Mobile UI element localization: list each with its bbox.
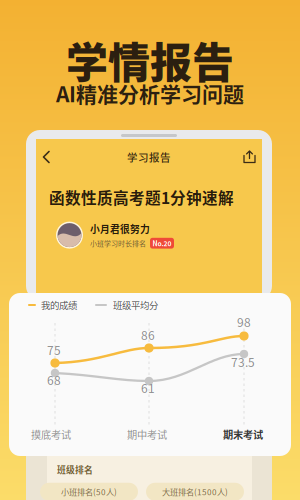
button[interactable]: 大班排名(1500人) <box>146 483 244 500</box>
staticText: 摸底考试 <box>31 427 71 442</box>
staticText: No.20 <box>152 238 171 248</box>
staticText: 学情报告 <box>66 30 234 90</box>
button[interactable]: 小班排名(50人) <box>40 483 138 500</box>
staticText: 86 <box>141 326 155 343</box>
staticText: 大班排名(1500人) <box>162 486 228 498</box>
staticText: 期末考试 <box>223 427 263 442</box>
staticText: 小班学习时长排名 <box>90 238 146 248</box>
staticText: 73.5 <box>231 353 255 370</box>
staticText: 班级排名 <box>57 463 93 476</box>
staticText: 98 <box>237 313 251 330</box>
staticText: 小月君很努力 <box>90 222 150 236</box>
staticText: 61 <box>141 379 155 396</box>
staticText: 函数性质高考题1分钟速解 <box>49 186 234 209</box>
staticText: 小班排名(50人) <box>61 486 117 498</box>
staticText: 学习报告 <box>127 149 171 165</box>
button[interactable]: 分享 <box>237 145 262 169</box>
staticText: 班级平均分 <box>113 298 158 312</box>
staticText: AI精准分析学习问题 <box>56 78 244 108</box>
button[interactable]: 返回 <box>36 145 57 169</box>
staticText: 期中考试 <box>127 427 167 442</box>
staticText: 我的成绩 <box>41 298 77 312</box>
staticText: 75 <box>47 341 61 358</box>
staticText: 68 <box>47 371 61 388</box>
